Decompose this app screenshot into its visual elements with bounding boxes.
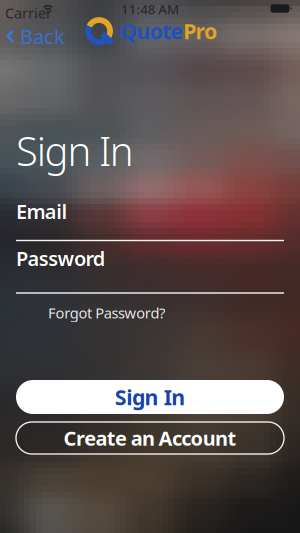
button[interactable]: Forgot Password?: [48, 303, 165, 322]
staticText: Forgot Password?: [48, 303, 165, 322]
staticText: Sign In: [115, 383, 185, 411]
staticText: Carrier: [5, 3, 52, 22]
staticText: Quote: [120, 17, 183, 45]
staticText: 11:48 AM: [121, 0, 179, 18]
button[interactable]: Sign In: [16, 380, 284, 414]
button[interactable]: Create an Account: [16, 422, 284, 454]
staticText: Sign In: [16, 124, 134, 177]
button[interactable]: Back: [6, 23, 65, 50]
staticText: Back: [20, 23, 65, 50]
staticText: Email: [16, 198, 68, 225]
staticText: Create an Account: [64, 425, 236, 451]
staticText: Pro: [183, 17, 217, 45]
staticText: Password: [16, 245, 106, 272]
